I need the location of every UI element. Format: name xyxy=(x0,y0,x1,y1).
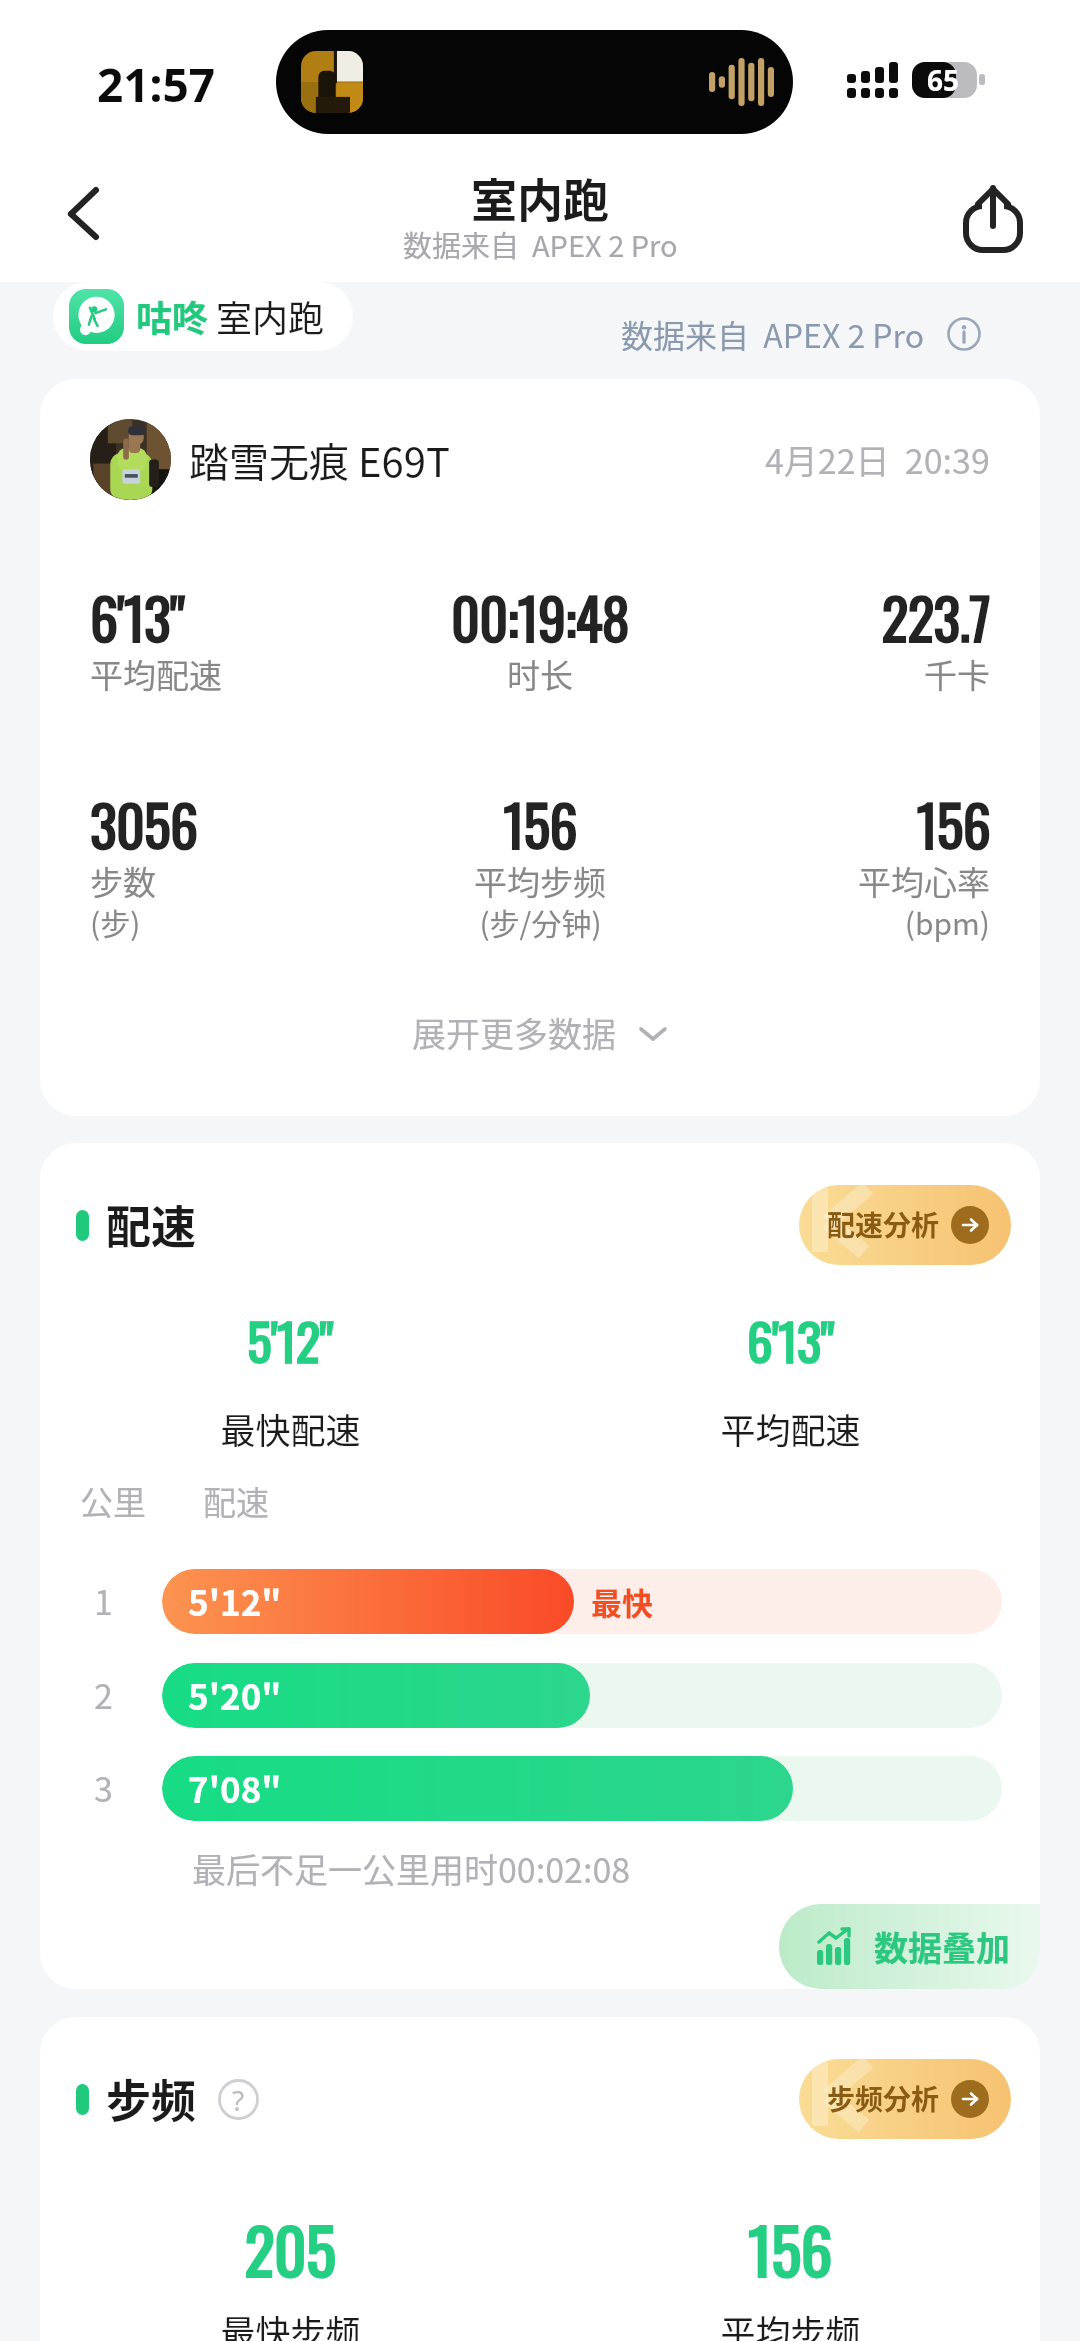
staticText: 配速分析 xyxy=(827,1204,940,1245)
staticText: 步数 xyxy=(90,857,156,905)
staticText: 展开更多数据 xyxy=(412,1008,616,1057)
staticText: 156 xyxy=(748,2202,832,2295)
staticText: 步频 xyxy=(106,2066,197,2131)
staticText: (步/分钟) xyxy=(479,900,602,943)
staticText: 5'12" xyxy=(188,1575,282,1626)
staticText: 平均步频 xyxy=(720,2305,861,2341)
staticText: (步) xyxy=(90,900,141,943)
staticText: 千卡 xyxy=(924,650,990,698)
button[interactable]: Share xyxy=(952,174,1032,254)
staticText: 最快 xyxy=(591,1579,653,1624)
staticText: 6'13" xyxy=(747,1302,834,1378)
staticText: 223.7 xyxy=(881,575,990,658)
staticText: 公里 xyxy=(80,1477,146,1525)
staticText: 踏雪无痕 E69T xyxy=(189,431,450,489)
staticText: 156 xyxy=(916,782,990,865)
staticText: 配速 xyxy=(106,1192,197,1257)
staticText: 5'20" xyxy=(188,1669,282,1720)
staticText: 65 xyxy=(927,61,960,97)
button[interactable]: 数据来自 APEX 2 Pro xyxy=(621,306,981,362)
button[interactable]: Help xyxy=(218,2079,259,2120)
button[interactable]: 展开更多数据 xyxy=(412,1008,668,1057)
staticText: 数据来自 APEX 2 Pro xyxy=(621,311,925,357)
staticText: (bpm) xyxy=(904,900,990,943)
staticText: 最快步频 xyxy=(220,2305,361,2341)
staticText: 156 xyxy=(503,782,577,865)
staticText: 步频分析 xyxy=(827,2078,940,2119)
staticText: 2 xyxy=(94,1670,113,1719)
staticText: 配速 xyxy=(203,1477,269,1525)
staticText: 平均配速 xyxy=(720,1403,861,1454)
staticText: 平均配速 xyxy=(90,650,222,698)
staticText: 室内跑 xyxy=(471,164,609,231)
staticText: 平均步频 xyxy=(474,857,606,905)
staticText: 00:19:48 xyxy=(451,575,629,658)
button[interactable]: 咕咚 xyxy=(53,282,353,351)
staticText: 时长 xyxy=(507,650,573,698)
button[interactable]: Back xyxy=(36,174,116,254)
staticText: 平均心率 xyxy=(858,857,990,905)
staticText: 3 xyxy=(94,1763,113,1812)
staticText: 最快配速 xyxy=(220,1403,361,1454)
staticText: 室内跑 xyxy=(216,290,325,342)
staticText: 4月22日 20:39 xyxy=(765,435,990,484)
staticText: 最后不足一公里用时00:02:08 xyxy=(192,1844,631,1893)
button[interactable]: 数据叠加 xyxy=(779,1904,1040,1989)
staticText: 5'12" xyxy=(247,1302,333,1378)
staticText: 数据叠加 xyxy=(874,1922,1010,1971)
staticText: 205 xyxy=(244,2202,336,2295)
staticText: 咕咚 xyxy=(136,290,209,342)
button[interactable]: 配速分析 xyxy=(799,1185,1011,1265)
staticText: 1 xyxy=(94,1576,113,1625)
staticText: ? xyxy=(232,2081,245,2119)
staticText: 3056 xyxy=(90,782,198,865)
staticText: 7'08" xyxy=(188,1762,282,1813)
staticText: 6'13" xyxy=(90,575,185,658)
button[interactable]: 步频分析 xyxy=(799,2059,1011,2139)
staticText: 数据来自 APEX 2 Pro xyxy=(403,223,678,265)
staticText: 21:57 xyxy=(97,53,216,116)
